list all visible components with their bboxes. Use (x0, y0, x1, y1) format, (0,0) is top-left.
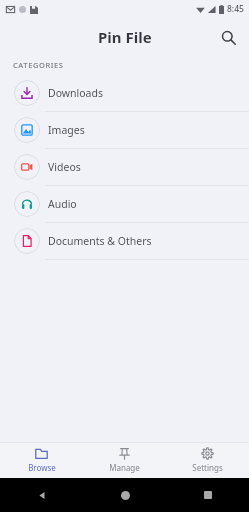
button[interactable]: Recents (194, 481, 222, 509)
staticText: Pin File (98, 27, 152, 47)
staticText: Downloads (48, 86, 103, 100)
staticText: 8:45 (227, 3, 244, 15)
button[interactable]: Documents & Others (0, 223, 249, 259)
button[interactable]: Back (28, 481, 56, 509)
staticText: Documents & Others (48, 234, 152, 248)
button[interactable]: Browse (0, 442, 83, 478)
staticText: Manage (109, 462, 140, 473)
button[interactable]: Videos (0, 149, 249, 185)
button[interactable]: Downloads (0, 75, 249, 111)
staticText: CATEGORIES (13, 60, 64, 70)
button[interactable]: Images (0, 112, 249, 148)
staticText: Audio (48, 197, 77, 211)
button[interactable]: Home (111, 481, 139, 509)
button[interactable]: Audio (0, 186, 249, 222)
staticText: Settings (192, 462, 223, 473)
button[interactable]: Settings (166, 442, 249, 478)
button[interactable]: Search (213, 22, 243, 52)
staticText: Browse (28, 462, 56, 473)
staticText: Images (48, 123, 85, 137)
button[interactable]: Manage (83, 442, 166, 478)
staticText: Videos (48, 160, 81, 174)
